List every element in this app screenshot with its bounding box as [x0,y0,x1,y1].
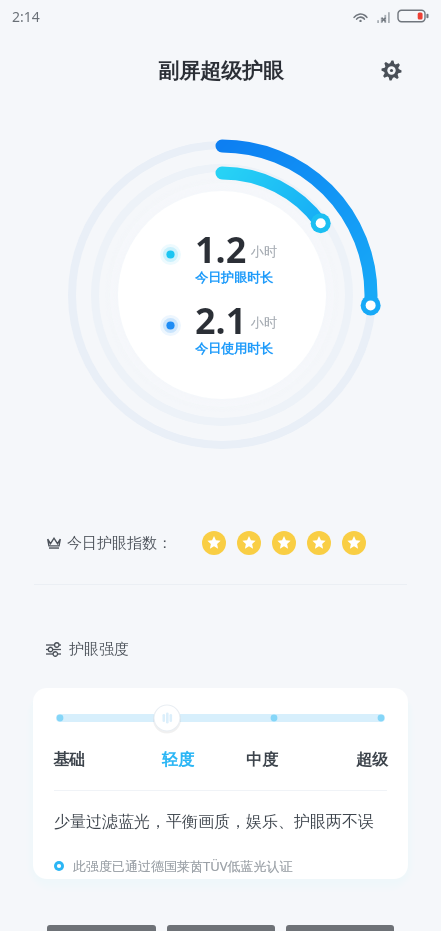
staticText: 今日护眼时长 [195,269,273,285]
button[interactable]: 超级 [304,745,388,775]
button[interactable]: 轻度 [136,745,220,775]
button[interactable] [167,925,275,931]
staticText: 基础 [53,750,85,770]
staticText: 轻度 [162,750,194,770]
button[interactable] [47,925,156,931]
button[interactable] [286,925,394,931]
staticText: 1.2 [195,225,247,274]
button[interactable]: Settings [371,50,411,90]
button[interactable]: 基础 [53,745,136,775]
staticText: 少量过滤蓝光，平衡画质，娱乐、护眼两不误 [54,812,374,832]
staticText: 中度 [246,750,278,770]
staticText: 副屏超级护眼 [158,58,284,84]
staticText: 今日使用时长 [195,340,273,356]
staticText: 小时 [251,243,277,259]
staticText: 今日护眼指数： [67,534,172,553]
staticText: 护眼强度 [69,640,129,659]
staticText: 2:14 [12,7,40,26]
button[interactable]: 中度 [220,745,304,775]
staticText: 2.1 [195,296,247,345]
staticText: 超级 [356,750,388,770]
staticText: 小时 [251,314,277,330]
staticText: 此强度已通过德国莱茵TÜV低蓝光认证 [73,857,293,875]
